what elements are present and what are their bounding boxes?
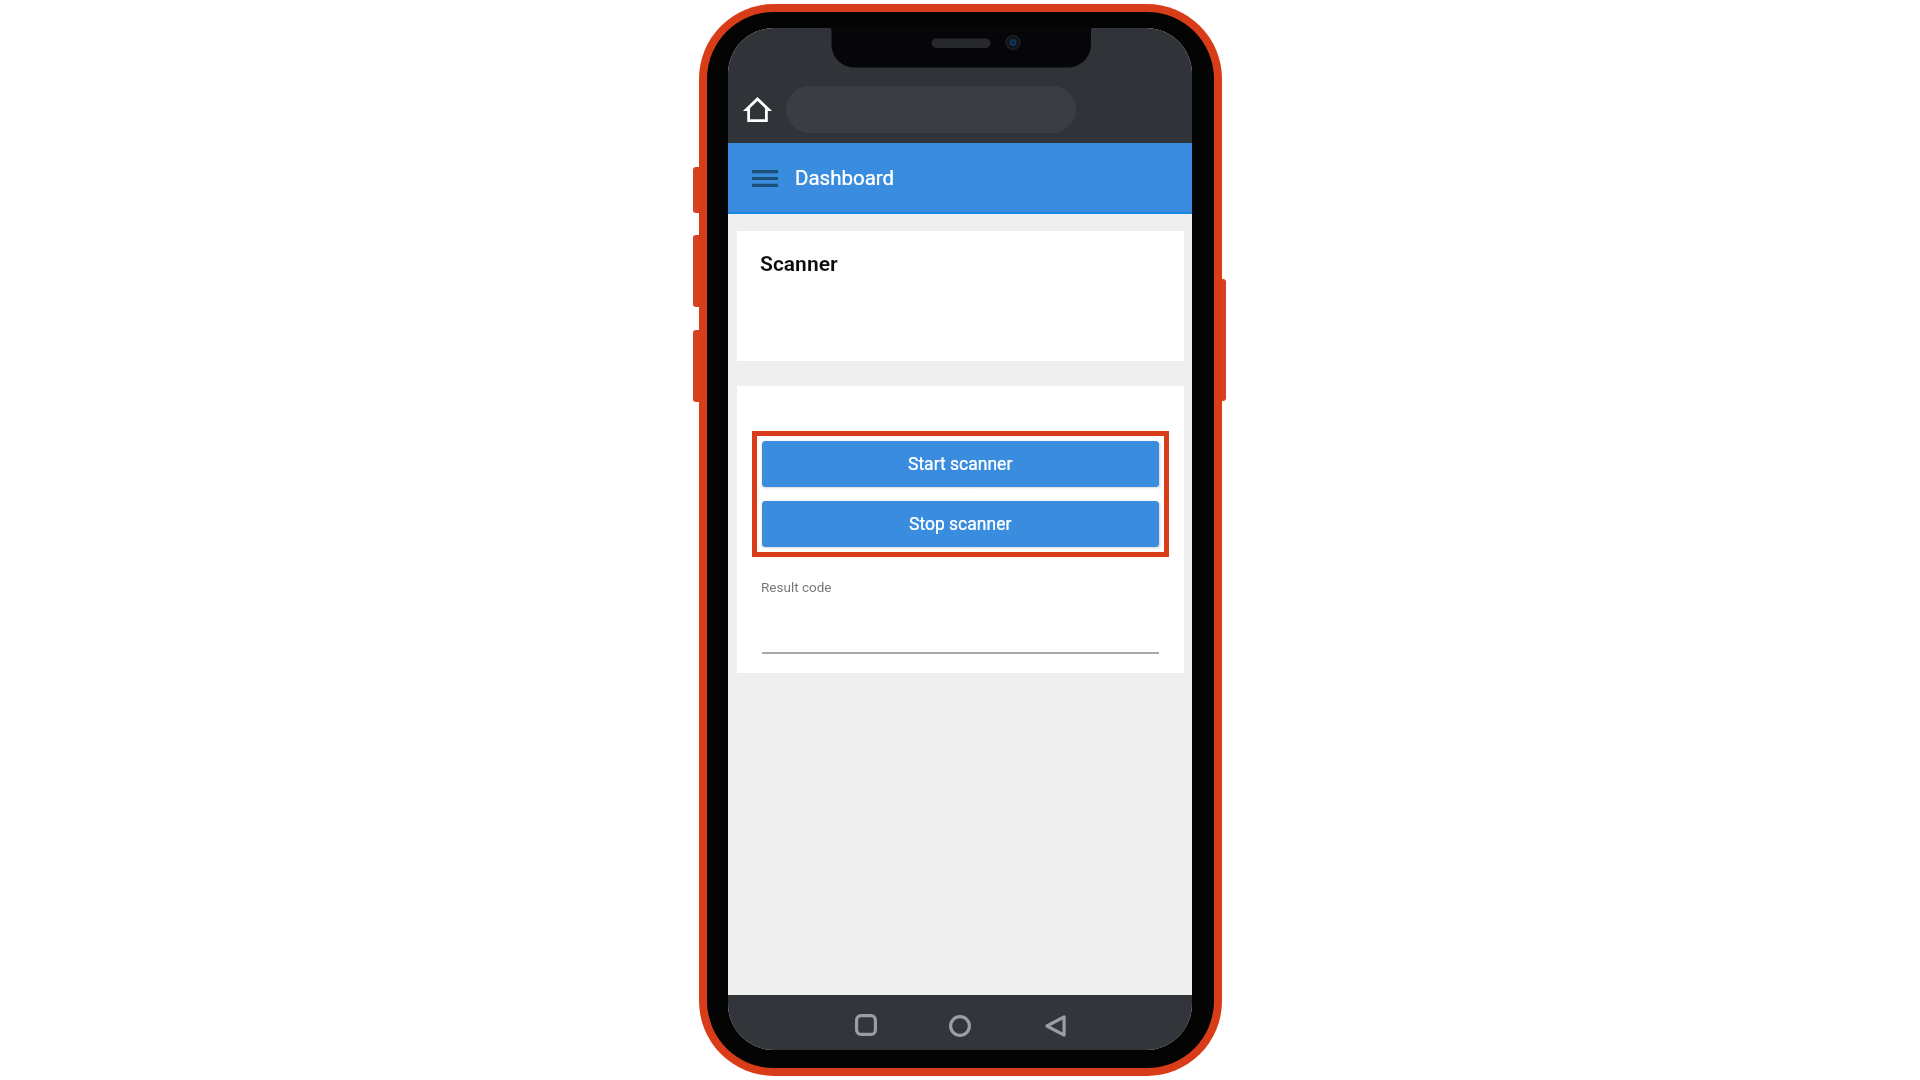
button[interactable]: Start scanner — [762, 441, 1159, 487]
button[interactable]: Home — [742, 94, 772, 124]
staticText: Result code — [761, 579, 832, 595]
staticText: Dashboard — [795, 166, 895, 190]
staticText: Start scanner — [908, 454, 1013, 475]
staticText: Stop scanner — [909, 514, 1012, 535]
button[interactable]: Recent apps — [846, 1005, 886, 1045]
staticText: Scanner — [760, 252, 838, 277]
button[interactable]: Open navigation menu — [748, 164, 782, 192]
button[interactable]: Back — [1035, 1006, 1075, 1046]
button[interactable]: Stop scanner — [762, 501, 1159, 547]
button[interactable]: Home — [940, 1006, 980, 1046]
